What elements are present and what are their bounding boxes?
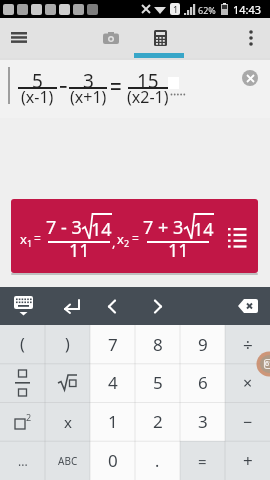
staticText: . xyxy=(155,450,160,472)
staticText: 11 xyxy=(69,238,90,263)
button[interactable]: ( xyxy=(0,325,45,363)
staticText: × xyxy=(243,372,253,394)
button[interactable]: . xyxy=(135,441,180,480)
button[interactable]: 6 xyxy=(180,363,225,402)
staticText: 7 xyxy=(108,333,118,356)
button[interactable]: = xyxy=(180,441,225,480)
button[interactable]: x xyxy=(45,402,90,441)
staticText: 15 xyxy=(137,68,159,94)
staticText: = xyxy=(198,451,207,471)
button[interactable]: 7 xyxy=(90,325,135,363)
staticText: 6 xyxy=(198,371,208,394)
button[interactable] xyxy=(91,18,131,58)
staticText: 4 xyxy=(108,371,118,394)
staticText: 61 xyxy=(265,359,270,369)
button[interactable] xyxy=(4,287,42,325)
button[interactable]: 9 xyxy=(180,325,225,363)
button[interactable] xyxy=(45,363,90,402)
staticText: 5 xyxy=(153,371,163,394)
button[interactable]: ... xyxy=(0,441,45,480)
staticText: , xyxy=(112,233,116,251)
staticText: 1 xyxy=(173,3,179,15)
staticText: + xyxy=(243,449,253,472)
staticText: ÷ xyxy=(243,333,253,356)
button[interactable]: 1 xyxy=(90,402,135,441)
staticText: 2 xyxy=(26,411,32,423)
button[interactable]: 4 xyxy=(90,363,135,402)
staticText: 1 xyxy=(108,410,118,433)
staticText: 7 + 3 xyxy=(143,215,184,240)
staticText: 2 xyxy=(153,410,163,433)
staticText: x xyxy=(117,230,124,248)
staticText: ABC xyxy=(58,454,78,468)
staticText: 3 xyxy=(198,410,208,433)
button[interactable]: ABC xyxy=(45,441,90,480)
button[interactable]: + xyxy=(225,441,270,480)
button[interactable]: ) xyxy=(45,325,90,363)
button[interactable] xyxy=(93,287,131,325)
staticText: 14:43 xyxy=(233,2,262,17)
staticText: (x+1) xyxy=(70,86,107,108)
button[interactable]: 0 xyxy=(90,441,135,480)
button[interactable] xyxy=(0,363,45,402)
button[interactable] xyxy=(228,287,268,325)
staticText: x xyxy=(20,230,27,248)
staticText: 8 xyxy=(153,333,163,356)
staticText: − xyxy=(243,411,253,433)
button[interactable] xyxy=(139,287,177,325)
staticText: 0 xyxy=(108,449,118,472)
staticText: (x-1) xyxy=(21,86,54,108)
button[interactable]: x xyxy=(11,199,258,273)
staticText: 7 - 3 xyxy=(46,215,82,240)
staticText: 5 xyxy=(32,68,43,94)
button[interactable]: 2 xyxy=(0,402,45,441)
staticText: (x2-1) xyxy=(127,86,169,108)
button[interactable]: 5 xyxy=(135,363,180,402)
staticText: ... xyxy=(18,453,28,469)
button[interactable] xyxy=(238,22,264,54)
staticText: 62% xyxy=(198,4,216,16)
staticText: 3 xyxy=(83,68,94,94)
button[interactable] xyxy=(242,70,258,86)
staticText: = xyxy=(132,230,139,246)
staticText: ) xyxy=(65,333,70,355)
button[interactable]: 3 xyxy=(180,402,225,441)
button[interactable]: 2 xyxy=(135,402,180,441)
staticText: 9 xyxy=(198,333,208,356)
staticText: 1 xyxy=(27,237,33,249)
button[interactable]: 8 xyxy=(135,325,180,363)
button[interactable] xyxy=(140,18,180,58)
staticText: = xyxy=(34,230,41,246)
button[interactable] xyxy=(6,24,32,50)
staticText: x xyxy=(64,412,72,432)
button[interactable]: − xyxy=(225,402,270,441)
button[interactable] xyxy=(53,287,91,325)
button[interactable]: × xyxy=(225,363,270,402)
staticText: 2 xyxy=(124,237,130,249)
staticText: ( xyxy=(20,333,25,355)
button[interactable]: ÷ xyxy=(225,325,270,363)
staticText: 14 xyxy=(193,217,214,242)
staticText: 11 xyxy=(168,238,189,263)
staticText: 14 xyxy=(91,217,112,242)
